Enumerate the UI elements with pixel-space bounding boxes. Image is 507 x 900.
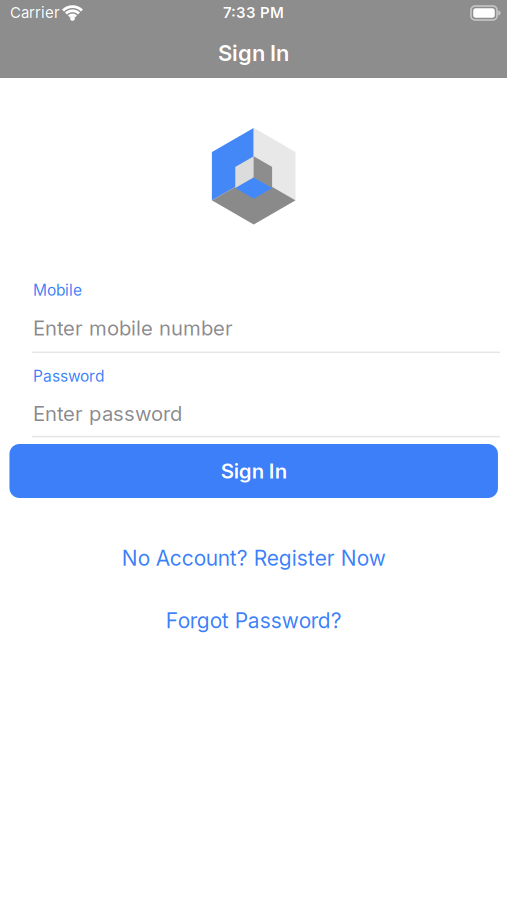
staticText: 7:33 PM bbox=[223, 3, 284, 21]
button[interactable]: Sign In bbox=[9, 444, 498, 498]
button[interactable]: Forgot Password? bbox=[166, 608, 342, 633]
staticText: Forgot Password? bbox=[166, 608, 342, 633]
staticText: Enter password bbox=[33, 401, 182, 426]
staticText: Enter mobile number bbox=[33, 316, 233, 340]
button[interactable]: Password bbox=[0, 362, 507, 441]
button[interactable]: Mobile bbox=[0, 276, 507, 356]
staticText: Sign In bbox=[218, 40, 289, 66]
staticText: Mobile bbox=[33, 281, 82, 299]
staticText: Carrier bbox=[10, 3, 60, 21]
staticText: No Account? Register Now bbox=[122, 545, 386, 571]
staticText: Sign In bbox=[221, 459, 287, 483]
button[interactable]: No Account? Register Now bbox=[122, 545, 386, 571]
staticText: Password bbox=[33, 367, 104, 385]
